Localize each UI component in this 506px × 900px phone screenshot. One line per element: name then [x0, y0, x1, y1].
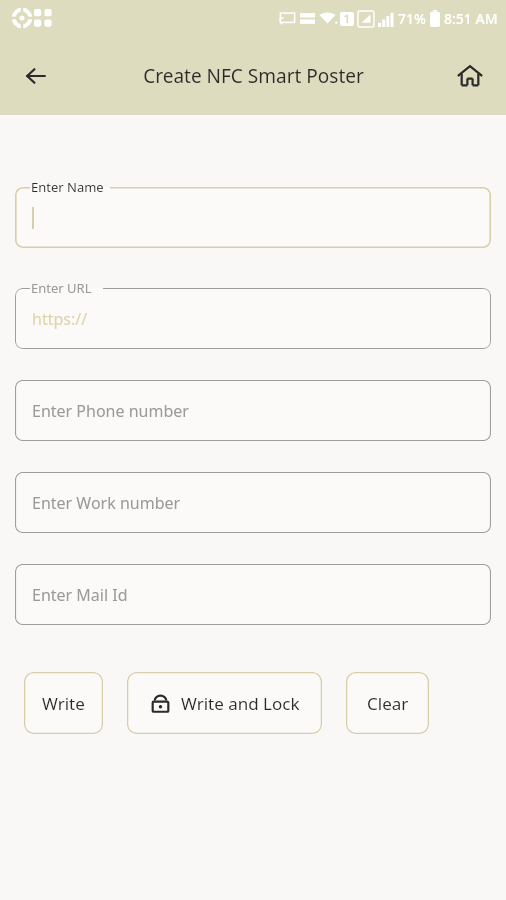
staticText: 8:51 AM — [444, 9, 498, 28]
staticText: Enter Mail Id — [32, 584, 128, 606]
staticText: Enter Phone number — [32, 400, 189, 422]
button[interactable]: Write — [24, 672, 103, 734]
staticText: Create NFC Smart Poster — [143, 63, 364, 89]
staticText: Clear — [367, 692, 409, 715]
staticText: Enter Work number — [32, 492, 181, 514]
button[interactable]: Clear — [346, 672, 429, 734]
button[interactable]: Back — [12, 52, 60, 100]
staticText: https:// — [32, 308, 88, 330]
button[interactable] — [15, 187, 491, 248]
button[interactable]: Enter Mail Id — [15, 564, 491, 625]
staticText: Write and Lock — [181, 692, 300, 715]
button[interactable]: Enter Work number — [15, 472, 491, 533]
staticText: Write — [42, 692, 85, 715]
button[interactable]: Home — [446, 52, 494, 100]
staticText: Enter Name — [31, 178, 104, 196]
button[interactable]: Write and Lock — [127, 672, 322, 734]
staticText: 71% — [398, 9, 426, 28]
button[interactable]: Enter Phone number — [15, 380, 491, 441]
button[interactable]: https:// — [15, 288, 491, 349]
staticText: Enter URL — [31, 279, 92, 297]
